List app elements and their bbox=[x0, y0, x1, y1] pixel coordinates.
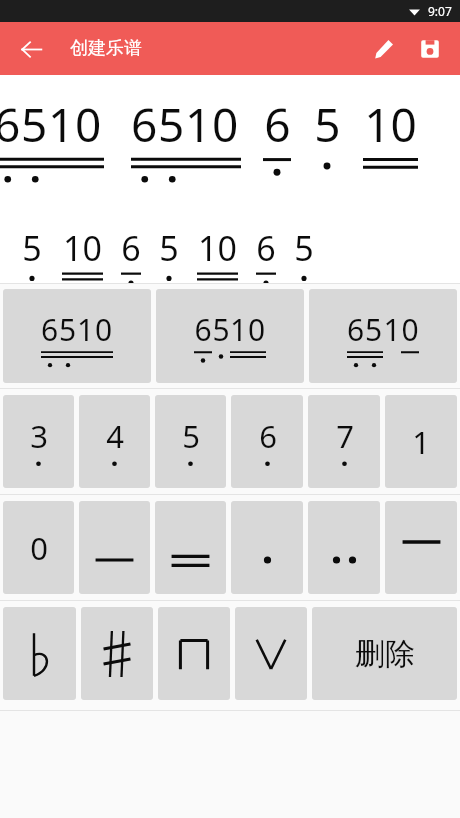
button[interactable]: 3 bbox=[3, 395, 74, 488]
staticText: 1 bbox=[412, 421, 430, 463]
staticText: 6 bbox=[0, 93, 21, 156]
staticText: 9:07 bbox=[428, 3, 452, 19]
button[interactable]: 5 bbox=[155, 395, 226, 488]
staticText: 10 bbox=[364, 93, 417, 156]
staticText: 0 bbox=[212, 93, 239, 156]
staticText: 3 bbox=[30, 415, 48, 457]
button[interactable]: Double underline bbox=[155, 501, 226, 594]
staticText: 0 bbox=[248, 309, 266, 350]
staticText: 5 bbox=[59, 309, 77, 350]
staticText: 1 bbox=[77, 309, 95, 350]
staticText: 6 bbox=[131, 93, 158, 156]
staticText: 1 bbox=[383, 309, 401, 350]
button[interactable]: 6 bbox=[309, 289, 457, 383]
staticText: 5 bbox=[159, 225, 179, 271]
staticText: 0 bbox=[75, 93, 102, 156]
staticText: 5 bbox=[212, 309, 230, 350]
button[interactable]: 4 bbox=[79, 395, 150, 488]
staticText: 6 bbox=[259, 415, 277, 457]
button[interactable]: Down bow bbox=[158, 607, 230, 700]
staticText: 6 bbox=[256, 225, 276, 271]
staticText: 5 bbox=[22, 225, 42, 271]
staticText: 4 bbox=[106, 415, 124, 457]
button[interactable]: 1 bbox=[385, 395, 457, 488]
staticText: 0 bbox=[30, 527, 48, 569]
button[interactable]: Two octave dots bbox=[308, 501, 380, 594]
staticText: 5 bbox=[365, 309, 383, 350]
staticText: 10 bbox=[198, 225, 237, 271]
button[interactable]: Flat bbox=[3, 607, 76, 700]
staticText: 6 bbox=[121, 225, 141, 271]
button[interactable]: 删除 bbox=[312, 607, 457, 700]
button[interactable]: Back bbox=[9, 27, 53, 71]
staticText: 删除 bbox=[355, 635, 415, 673]
staticText: 7 bbox=[336, 415, 354, 457]
button[interactable]: Sharp bbox=[81, 607, 153, 700]
button[interactable]: Octave dot bbox=[231, 501, 303, 594]
button[interactable]: Up bow bbox=[235, 607, 307, 700]
button[interactable]: 6 bbox=[3, 289, 151, 383]
staticText: 10 bbox=[63, 225, 102, 271]
staticText: 0 bbox=[95, 309, 113, 350]
button[interactable]: Save bbox=[408, 27, 452, 71]
staticText: 6 bbox=[194, 309, 212, 350]
staticText: 6 bbox=[264, 93, 291, 156]
button[interactable]: 6 bbox=[156, 289, 304, 383]
staticText: 创建乐谱 bbox=[70, 37, 142, 60]
staticText: 6 bbox=[41, 309, 59, 350]
staticText: 5 bbox=[182, 415, 200, 457]
staticText: 5 bbox=[294, 225, 314, 271]
staticText: 5 bbox=[158, 93, 185, 156]
button[interactable]: 0 bbox=[3, 501, 74, 594]
button[interactable]: Single underline bbox=[79, 501, 150, 594]
staticText: 1 bbox=[230, 309, 248, 350]
button[interactable]: Edit bbox=[362, 27, 406, 71]
staticText: 1 bbox=[185, 93, 212, 156]
staticText: 0 bbox=[401, 309, 419, 350]
button[interactable]: 6 bbox=[231, 395, 303, 488]
staticText: 6 bbox=[347, 309, 365, 350]
staticText: 5 bbox=[314, 93, 341, 156]
staticText: 5 bbox=[21, 93, 48, 156]
button[interactable]: 7 bbox=[308, 395, 380, 488]
button[interactable]: Sustain dash bbox=[385, 501, 457, 594]
staticText: 1 bbox=[48, 93, 75, 156]
